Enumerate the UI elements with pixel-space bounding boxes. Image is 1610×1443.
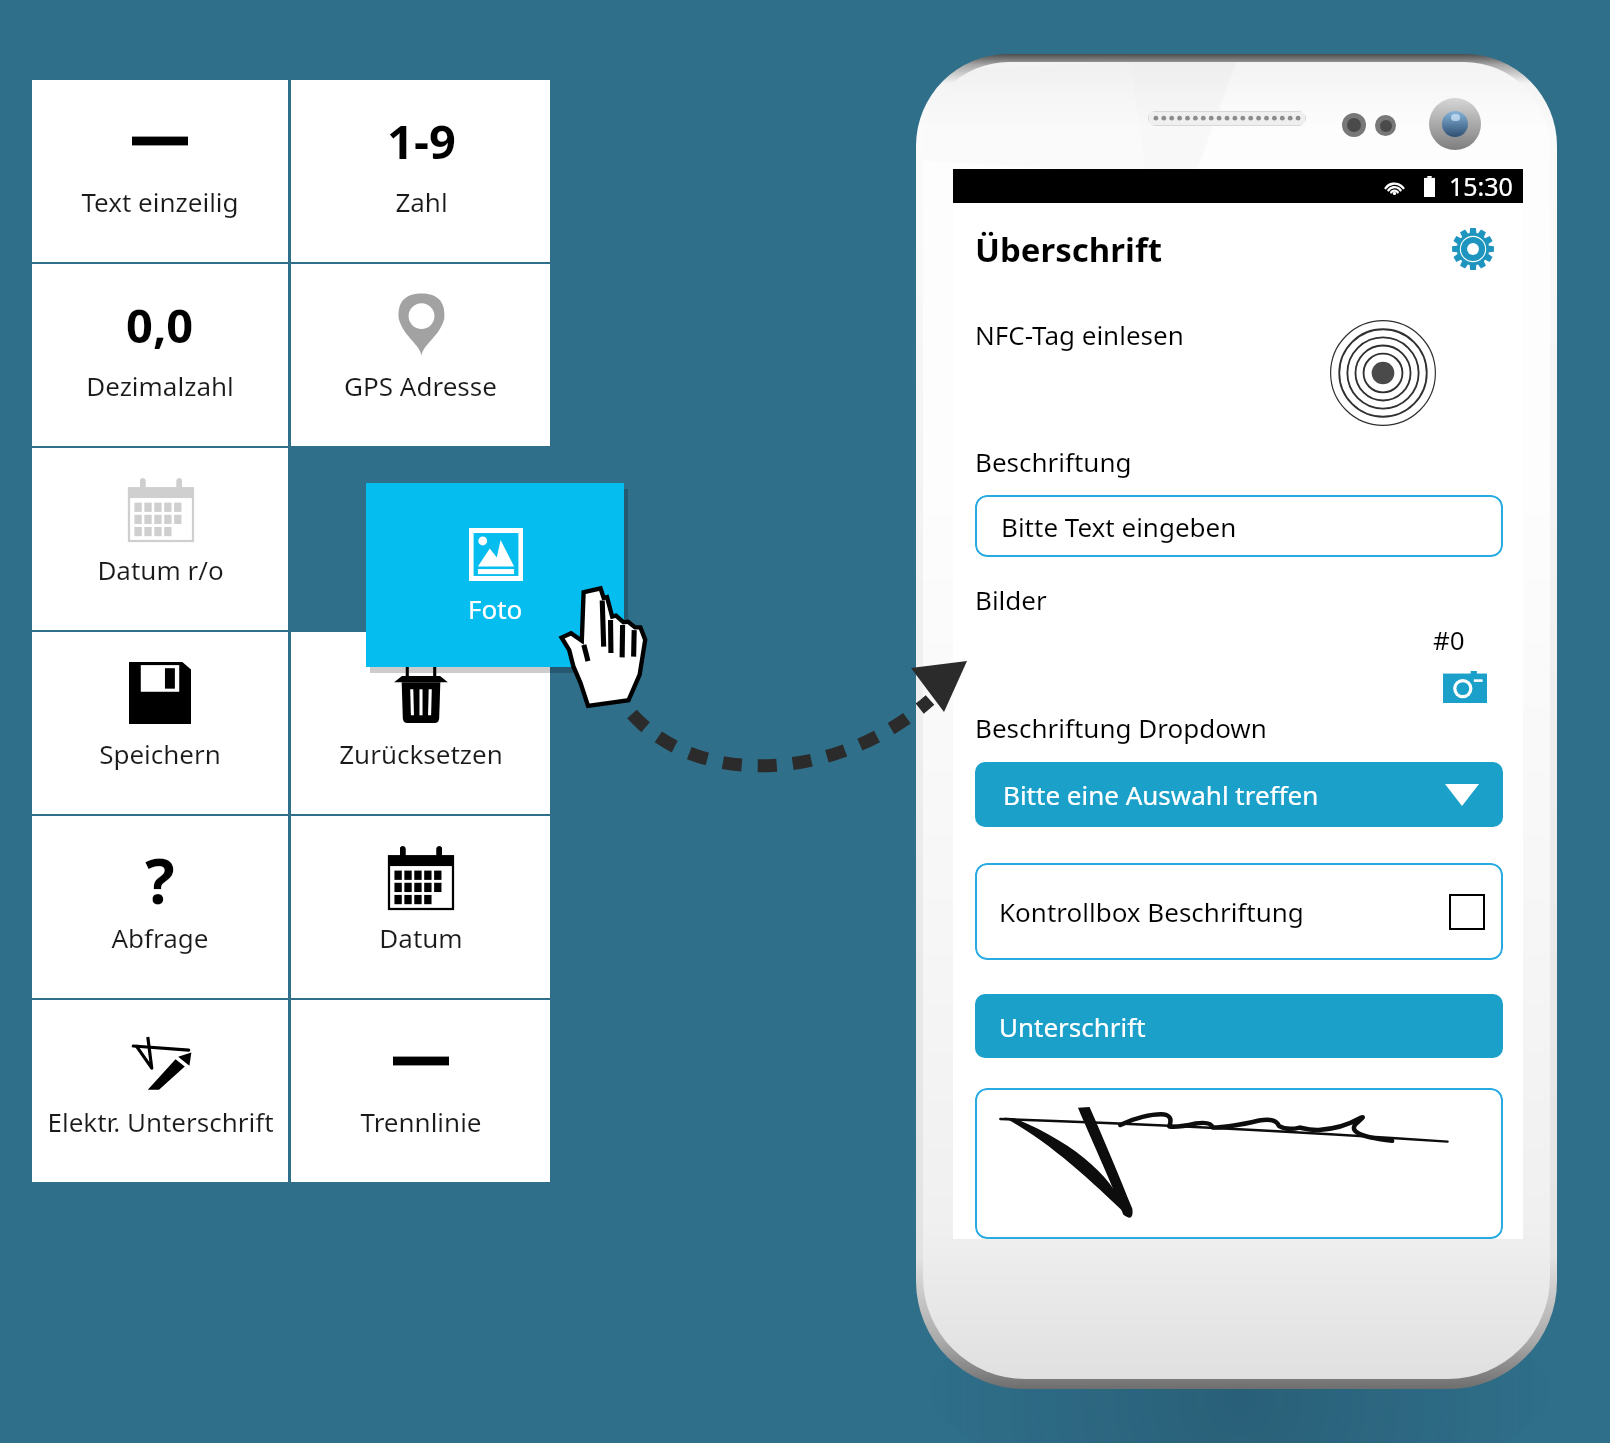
staticText: 0,0 <box>126 293 194 357</box>
button[interactable]: Datum <box>291 816 550 998</box>
button[interactable]: Kamera <box>1443 671 1487 703</box>
button[interactable]: 1-9 <box>291 80 550 262</box>
staticText: 15:30 <box>1449 169 1513 203</box>
staticText: Bitte eine Auswahl treffen <box>1003 777 1319 812</box>
button[interactable]: Bitte eine Auswahl treffen <box>975 762 1503 827</box>
staticText: Bilder <box>975 582 1047 617</box>
staticText: Unterschrift <box>999 1009 1146 1044</box>
staticText: GPS Adresse <box>344 368 497 403</box>
staticText: Abfrage <box>111 920 209 955</box>
staticText: Beschriftung <box>975 444 1132 479</box>
staticText: Foto <box>468 591 523 626</box>
button[interactable]: ? <box>32 816 288 998</box>
button[interactable]: Zurücksetzen <box>291 632 550 814</box>
button[interactable]: Kontrollbox Beschriftung <box>975 863 1503 960</box>
staticText: #0 <box>1433 622 1465 657</box>
button[interactable]: 0,0 <box>32 264 288 446</box>
staticText: Kontrollbox Beschriftung <box>999 894 1304 929</box>
staticText: ? <box>145 838 175 916</box>
staticText: 1-9 <box>387 109 456 173</box>
button[interactable]: Unterschrift <box>975 994 1503 1058</box>
staticText: Zahl <box>395 184 448 219</box>
button[interactable]: Datum r/o <box>32 448 288 630</box>
button[interactable]: Bitte Text eingeben <box>975 495 1503 557</box>
staticText: Beschriftung Dropdown <box>975 710 1267 745</box>
staticText: Datum <box>379 920 463 955</box>
staticText: Bitte Text eingeben <box>1001 509 1237 544</box>
button[interactable]: NFC-Tag einlesen <box>1328 318 1438 428</box>
button[interactable]: Trennlinie <box>291 1000 550 1182</box>
button[interactable]: GPS Adresse <box>291 264 550 446</box>
staticText: Trennlinie <box>360 1104 482 1139</box>
other: Zeiger <box>558 588 660 716</box>
staticText: Dezimalzahl <box>86 368 234 403</box>
button[interactable]: Foto <box>366 483 624 667</box>
button[interactable]: Text einzeilig <box>32 80 288 262</box>
staticText: Elektr. Unterschrift <box>47 1104 274 1139</box>
staticText: Zurücksetzen <box>339 736 503 771</box>
button[interactable]: Elektr. Unterschrift <box>32 1000 288 1182</box>
staticText: Datum r/o <box>97 552 224 587</box>
button[interactable]: Einstellungen <box>1449 225 1497 273</box>
staticText: NFC-Tag einlesen <box>975 317 1184 352</box>
staticText: Überschrift <box>975 227 1163 272</box>
staticText: Speichern <box>99 736 221 771</box>
staticText: Text einzeilig <box>81 184 239 219</box>
button[interactable]: Speichern <box>32 632 288 814</box>
